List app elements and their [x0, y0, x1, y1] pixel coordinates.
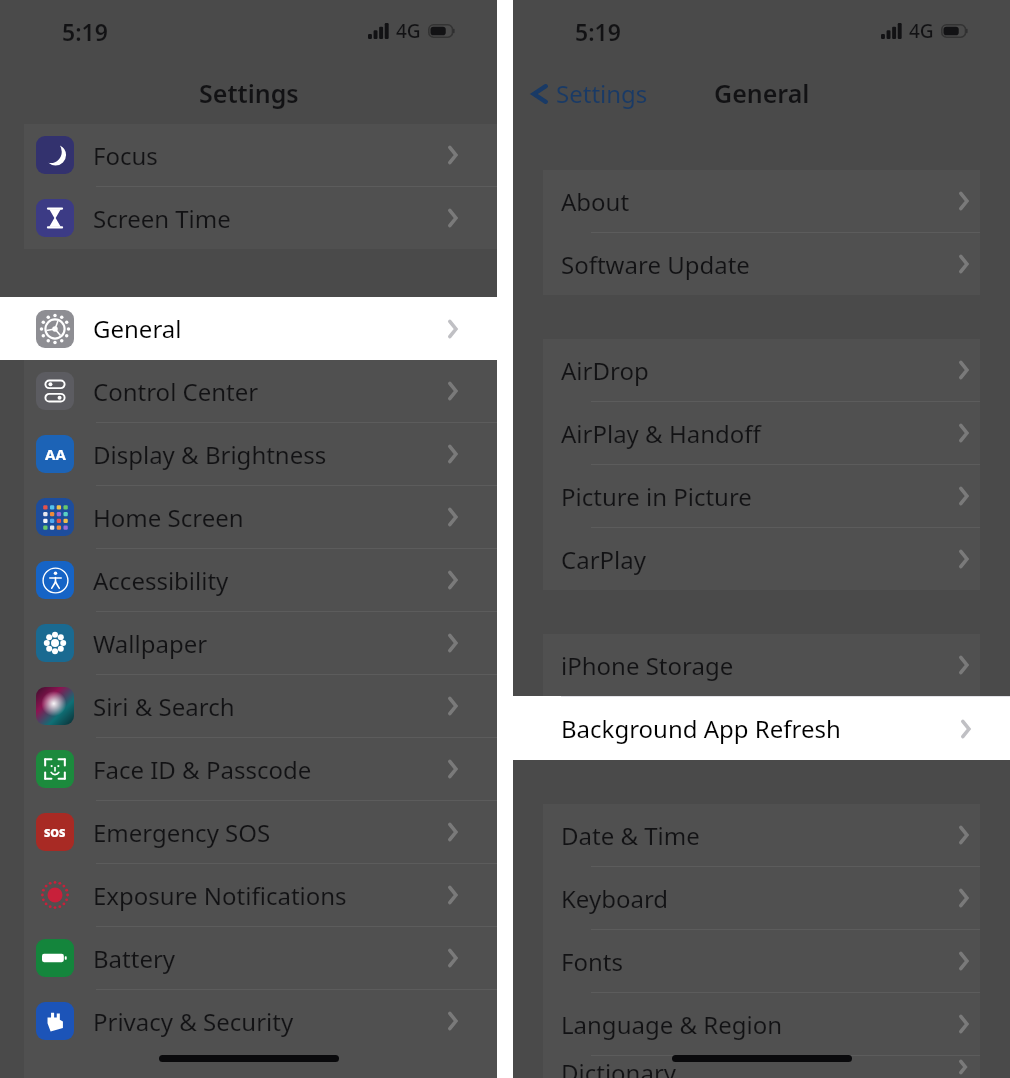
- staticText: iPhone Storage: [561, 649, 734, 682]
- staticText: Battery: [93, 942, 176, 975]
- staticText: Picture in Picture: [561, 480, 752, 513]
- button[interactable]: AirPlay & Handoff: [543, 402, 980, 464]
- staticText: AirDrop: [561, 354, 649, 387]
- staticText: Accessibility: [93, 564, 229, 597]
- staticText: CarPlay: [561, 543, 646, 576]
- staticText: General: [714, 76, 810, 110]
- button[interactable]: Siri & Search: [24, 675, 497, 737]
- staticText: Privacy & Security: [93, 1005, 294, 1038]
- staticText: SOS: [44, 825, 66, 840]
- staticText: 4G: [909, 18, 934, 44]
- staticText: Emergency SOS: [93, 816, 271, 849]
- staticText: Background App Refresh: [561, 712, 841, 745]
- button[interactable]: Fonts: [543, 930, 980, 992]
- button[interactable]: Picture in Picture: [543, 465, 980, 527]
- staticText: Control Center: [93, 375, 259, 408]
- staticText: Face ID & Passcode: [93, 753, 312, 786]
- staticText: Settings: [199, 76, 299, 110]
- staticText: Dictionary: [561, 1056, 677, 1078]
- staticText: Fonts: [561, 945, 623, 978]
- staticText: 4G: [396, 18, 421, 44]
- staticText: Display & Brightness: [93, 438, 327, 471]
- button[interactable]: AA: [24, 423, 497, 485]
- button[interactable]: About: [543, 170, 980, 232]
- staticText: Home Screen: [93, 501, 244, 534]
- button[interactable]: Face ID & Passcode: [24, 738, 497, 800]
- button[interactable]: Accessibility: [24, 549, 497, 611]
- button[interactable]: General: [0, 297, 497, 360]
- staticText: Focus: [93, 139, 158, 172]
- button[interactable]: SOS: [24, 801, 497, 863]
- button[interactable]: Control Center: [24, 360, 497, 422]
- button[interactable]: Privacy & Security: [24, 990, 497, 1052]
- button[interactable]: Exposure Notifications: [24, 864, 497, 926]
- button[interactable]: CarPlay: [543, 528, 980, 590]
- staticText: AirPlay & Handoff: [561, 417, 761, 450]
- staticText: Keyboard: [561, 882, 669, 915]
- button[interactable]: Software Update: [543, 233, 980, 295]
- staticText: 5:19: [575, 16, 621, 47]
- staticText: Wallpaper: [93, 627, 208, 660]
- button[interactable]: Keyboard: [543, 867, 980, 929]
- button[interactable]: AirDrop: [543, 339, 980, 401]
- staticText: General: [93, 312, 182, 345]
- button[interactable]: Background App Refresh: [513, 696, 1010, 760]
- staticText: Exposure Notifications: [93, 879, 347, 912]
- staticText: Language & Region: [561, 1008, 783, 1041]
- staticText: Screen Time: [93, 202, 231, 235]
- button[interactable]: Back to Settings: [523, 73, 658, 114]
- button[interactable]: Home Screen: [24, 486, 497, 548]
- button[interactable]: Screen Time: [24, 187, 497, 249]
- button[interactable]: iPhone Storage: [543, 634, 980, 696]
- staticText: Settings: [556, 77, 648, 110]
- staticText: Software Update: [561, 248, 750, 281]
- button[interactable]: Language & Region: [543, 993, 980, 1055]
- button[interactable]: Wallpaper: [24, 612, 497, 674]
- staticText: AA: [45, 444, 66, 464]
- button[interactable]: Battery: [24, 927, 497, 989]
- button[interactable]: Date & Time: [543, 804, 980, 866]
- staticText: Date & Time: [561, 819, 700, 852]
- staticText: 5:19: [62, 16, 108, 47]
- button[interactable]: Dictionary: [543, 1056, 980, 1078]
- button[interactable]: Focus: [24, 124, 497, 186]
- staticText: About: [561, 185, 630, 218]
- staticText: Siri & Search: [93, 690, 235, 723]
